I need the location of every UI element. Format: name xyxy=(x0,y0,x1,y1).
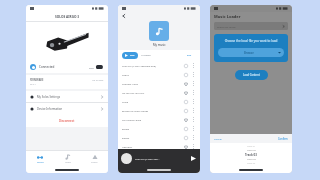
button[interactable]: Favorite xyxy=(183,126,189,132)
staticText: Heavenly xyxy=(122,145,183,148)
button[interactable]: More options xyxy=(191,81,196,86)
staticText: 95% xyxy=(89,66,94,69)
button[interactable]: Favorite xyxy=(183,135,189,141)
staticText: Track 05 xyxy=(247,162,256,165)
button[interactable]: Cancel xyxy=(214,137,222,140)
staticText: Music xyxy=(65,161,71,164)
button[interactable]: More options xyxy=(191,153,196,158)
button[interactable]: We Wanna Leave xyxy=(118,115,200,124)
staticText: We Wanna Leave xyxy=(122,118,183,121)
staticText: Walk On (A Very Sep... xyxy=(135,157,189,160)
staticText: Track 02 xyxy=(247,149,256,152)
staticText: Coach xyxy=(91,161,98,164)
button[interactable]: More options xyxy=(191,135,196,140)
staticText: Track 03 xyxy=(245,153,257,157)
button[interactable]: Favorite xyxy=(183,99,189,105)
staticText: Lanterns and Cases xyxy=(122,170,183,173)
staticText: Let Me Tell You Why xyxy=(122,91,183,94)
button[interactable]: Summer Child xyxy=(118,79,200,88)
staticText: Music Loader xyxy=(214,14,241,19)
button[interactable]: Eleven xyxy=(118,133,200,142)
button[interactable]: Back xyxy=(121,13,127,19)
button[interactable]: More options xyxy=(191,90,196,95)
button[interactable]: Search for music xyxy=(214,22,288,30)
button[interactable]: Sirens xyxy=(118,70,200,79)
staticText: Eleven xyxy=(122,136,183,139)
button[interactable]: More options xyxy=(191,108,196,113)
staticText: Load Content xyxy=(243,73,260,77)
button[interactable]: FIRMWARE xyxy=(26,75,108,89)
staticText: Edit xyxy=(187,54,192,57)
button[interactable]: Favorite xyxy=(183,72,189,78)
staticText: Browse xyxy=(244,51,254,55)
staticText: Play xyxy=(130,54,135,57)
button[interactable]: Edit xyxy=(183,52,196,59)
button[interactable]: Connected xyxy=(26,61,108,73)
button[interactable]: Coach xyxy=(81,151,108,167)
staticText: Up to date xyxy=(92,79,104,82)
button[interactable]: More options xyxy=(191,72,196,77)
button[interactable]: Play xyxy=(189,154,197,162)
button[interactable]: Heavenly xyxy=(118,142,200,151)
button[interactable]: Walk On (A Very Separate End) xyxy=(118,61,200,70)
staticText: Track 04 xyxy=(247,158,256,161)
button[interactable]: More options xyxy=(191,63,196,68)
staticText: Connected xyxy=(39,65,55,69)
button[interactable]: Let Me Tell You Why xyxy=(118,88,200,97)
staticText: Confirm xyxy=(278,137,288,140)
button[interactable]: Disconnect xyxy=(26,114,108,127)
button[interactable]: Music xyxy=(54,151,81,167)
button[interactable]: Wave xyxy=(118,97,200,106)
staticText: FIRMWARE xyxy=(30,78,44,82)
button[interactable]: Device xyxy=(26,151,54,167)
staticText: Device xyxy=(37,161,44,164)
button[interactable]: Play xyxy=(122,52,138,59)
button[interactable]: More options xyxy=(191,117,196,122)
staticText: Up All Day xyxy=(122,163,183,166)
staticText: Summer Child xyxy=(122,82,183,85)
button[interactable]: Bambi xyxy=(118,124,200,133)
staticText: Chiseled xyxy=(122,154,183,157)
button[interactable]: Brother & Sister Stories xyxy=(118,106,200,115)
staticText: Device Information xyxy=(37,107,63,111)
button[interactable]: Confirm xyxy=(278,137,288,140)
staticText: Choose the local file you want to load xyxy=(218,39,284,43)
button[interactable]: My Solos Settings xyxy=(26,91,108,102)
button[interactable]: More options xyxy=(191,144,196,149)
staticText: 13 tracks xyxy=(141,54,151,57)
button[interactable]: Lanterns and Cases xyxy=(118,169,200,173)
button[interactable]: Load Content xyxy=(235,70,268,80)
staticText: Track 01 xyxy=(247,145,256,148)
staticText: Cancel xyxy=(214,137,222,140)
staticText: Brother & Sister Stories xyxy=(122,109,183,112)
staticText: Search for music xyxy=(217,25,236,28)
staticText: Bambi xyxy=(122,127,183,130)
button[interactable]: Favorite xyxy=(183,144,189,150)
button[interactable]: Up All Day xyxy=(118,160,200,169)
staticText: My music xyxy=(153,43,166,47)
staticText: v2.0.1 xyxy=(30,83,36,86)
staticText: Sirens xyxy=(122,73,183,76)
button[interactable]: Favorite xyxy=(183,108,189,114)
button[interactable]: Walk On (A Very Sep... xyxy=(118,149,200,167)
button[interactable]: Favorite xyxy=(183,117,189,123)
staticText: Walk On (A Very Separate End) xyxy=(122,64,183,67)
button[interactable]: More options xyxy=(191,99,196,104)
staticText: SOLOS AIRGO 3 xyxy=(55,15,80,19)
staticText: Wave xyxy=(122,100,183,103)
button[interactable]: Device Information xyxy=(26,103,108,114)
button[interactable]: Favorite xyxy=(183,81,189,87)
staticText: My Solos Settings xyxy=(37,95,61,99)
button[interactable]: Chiseled xyxy=(118,151,200,160)
button[interactable]: Favorite xyxy=(183,63,189,69)
button[interactable]: Favorite xyxy=(183,90,189,96)
staticText: Disconnect xyxy=(59,119,75,123)
button[interactable]: Browse xyxy=(218,48,284,57)
button[interactable]: More options xyxy=(191,126,196,131)
